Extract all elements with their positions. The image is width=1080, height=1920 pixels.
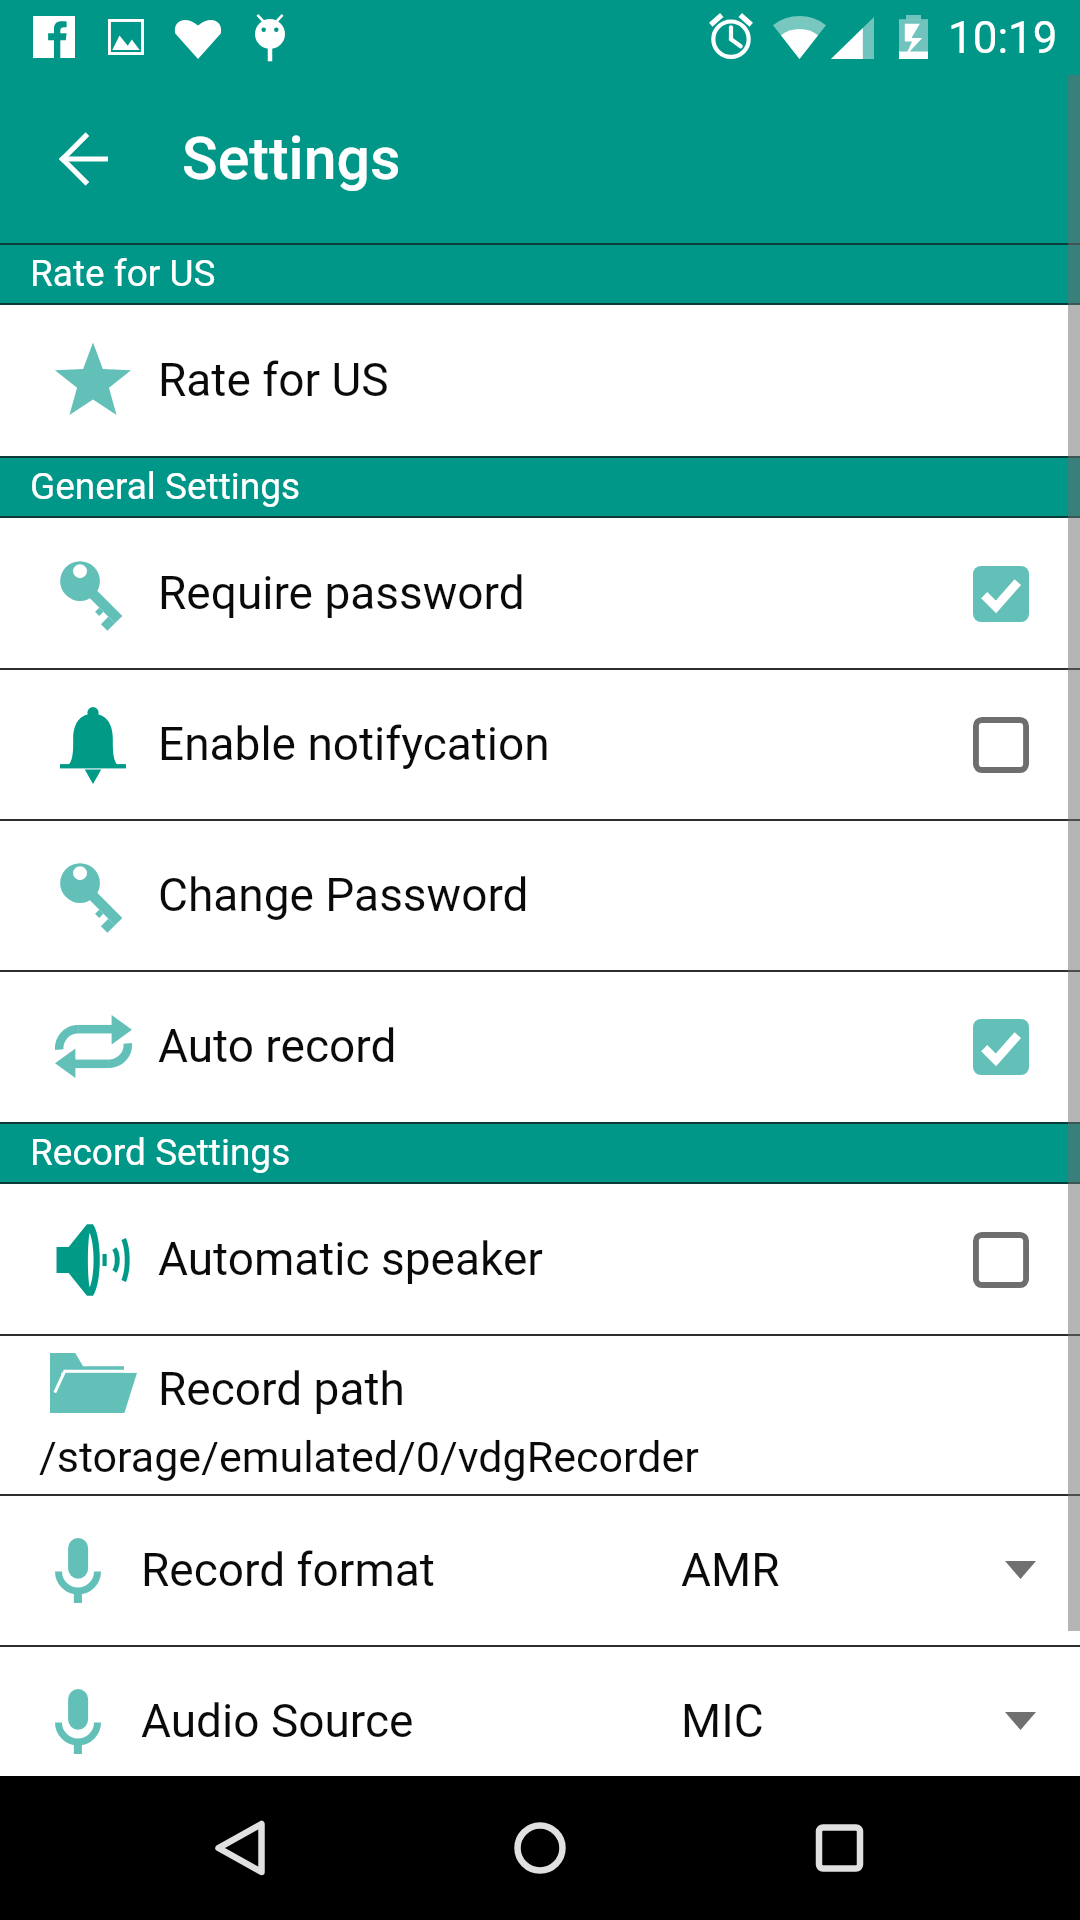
button[interactable]: Require password <box>0 518 1080 669</box>
button[interactable]: Auto record <box>0 971 1080 1122</box>
staticText: Auto record <box>158 1019 397 1073</box>
button[interactable]: Automatic speaker <box>0 1184 1080 1335</box>
staticText: Rate for US <box>158 353 389 407</box>
staticText: Enable notifycation <box>158 717 550 771</box>
button[interactable]: Enable notifycation <box>0 669 1080 820</box>
staticText: Record Settings <box>30 1131 291 1174</box>
staticText: /storage/emulated/0/vdgRecorder <box>39 1432 699 1482</box>
button[interactable]: Audio Source <box>0 1646 1080 1797</box>
button[interactable]: Record format <box>0 1495 1080 1646</box>
button[interactable]: Change Password <box>0 820 1080 971</box>
staticText: General Settings <box>30 465 301 508</box>
staticText: Record format <box>141 1543 435 1597</box>
staticText: 10:19 <box>948 12 1058 64</box>
button[interactable]: Record path <box>0 1335 1080 1495</box>
staticText: Change Password <box>158 868 529 922</box>
staticText: Settings <box>182 124 401 193</box>
staticText: Audio Source <box>141 1694 414 1748</box>
button[interactable]: Back <box>40 115 128 203</box>
staticText: Automatic speaker <box>158 1232 543 1286</box>
staticText: Require password <box>158 566 525 620</box>
staticText: Record path <box>158 1362 405 1416</box>
staticText: MIC <box>681 1694 764 1748</box>
staticText: AMR <box>681 1543 780 1597</box>
button[interactable]: Rate for US <box>0 305 1080 456</box>
staticText: Rate for US <box>30 252 216 295</box>
